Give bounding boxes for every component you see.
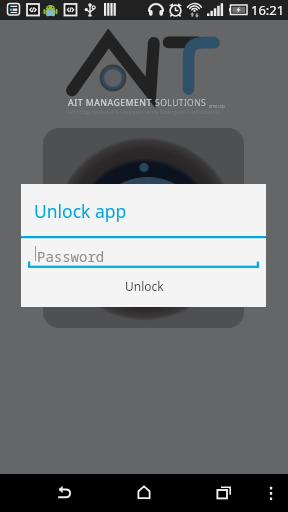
staticText: AIT MANAGEMENT [68, 97, 155, 109]
button[interactable]: Recent apps [203, 474, 245, 512]
button[interactable]: Back [44, 474, 86, 512]
button[interactable]: Home [123, 474, 165, 512]
staticText: Unlock [125, 278, 164, 294]
staticText: 16:21 [251, 1, 285, 19]
button[interactable]: Unlock [105, 272, 183, 302]
staticText: (PTY) LTD [209, 104, 225, 109]
staticText: Technology Application & Integration for… [67, 109, 221, 115]
button[interactable]: More options [254, 474, 288, 512]
staticText: Unlock app [34, 199, 127, 223]
staticText: Password [37, 247, 105, 266]
staticText: SOLUTIONS [155, 97, 209, 109]
